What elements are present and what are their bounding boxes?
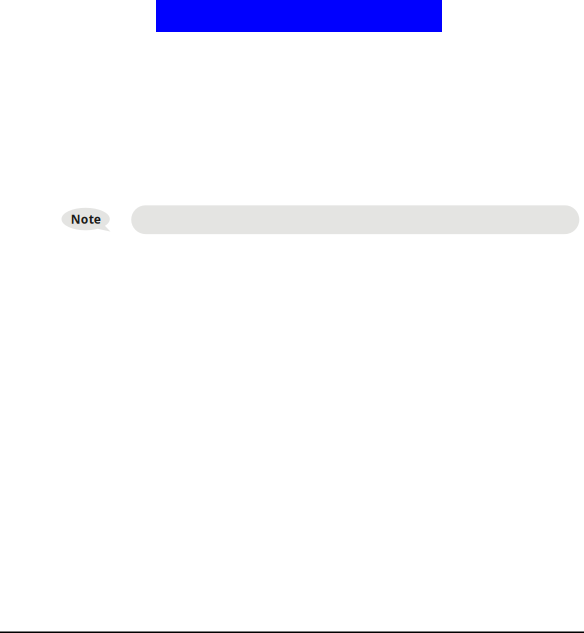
staticText: Note (71, 211, 101, 227)
